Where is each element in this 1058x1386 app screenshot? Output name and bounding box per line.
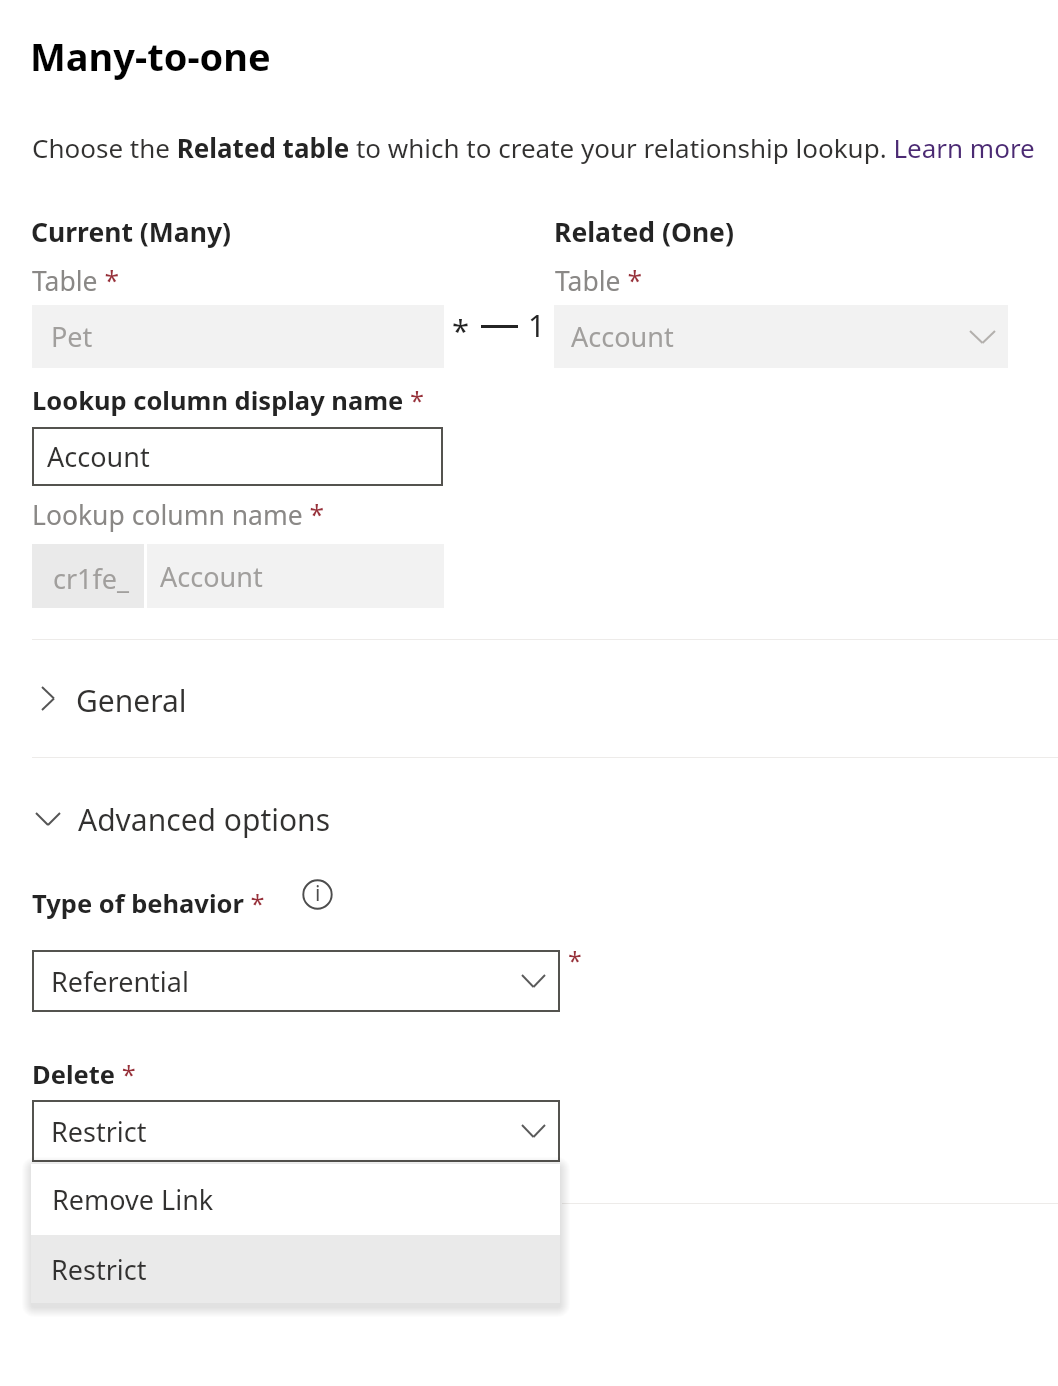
button[interactable]: Learn more [899, 133, 1035, 163]
staticText: Restrict [51, 1113, 147, 1150]
staticText: i [315, 879, 321, 908]
staticText: Account [47, 438, 150, 475]
button[interactable]: Account [32, 427, 443, 486]
staticText: Pet [51, 318, 93, 355]
staticText: Remove Link [52, 1181, 214, 1218]
staticText: Advanced options [78, 799, 331, 840]
staticText: Table * [32, 263, 120, 299]
button[interactable]: Advanced options [32, 787, 1058, 851]
staticText: Many-to-one [30, 30, 271, 82]
staticText: Related (One) [554, 214, 734, 250]
staticText: * [452, 309, 470, 351]
staticText: Lookup column display name * [32, 383, 424, 418]
button[interactable]: Restrict [32, 1100, 560, 1162]
button[interactable]: Restrict [31, 1235, 560, 1303]
staticText: Restrict [51, 1251, 147, 1288]
staticText: * [568, 943, 582, 977]
staticText: Account [571, 318, 674, 355]
staticText: General [76, 680, 187, 721]
button[interactable]: Pet [32, 305, 444, 368]
button[interactable]: Referential [32, 950, 560, 1012]
button[interactable]: Account [147, 544, 444, 608]
staticText: Lookup column name * [32, 497, 325, 533]
staticText: Table * [555, 263, 643, 299]
button[interactable]: Remove Link [31, 1164, 560, 1235]
staticText: Delete * [32, 1057, 136, 1092]
button[interactable]: More information [302, 879, 333, 910]
staticText: Current (Many) [31, 214, 232, 250]
staticText: Type of behavior * [32, 886, 265, 921]
staticText: 1 [528, 305, 546, 346]
staticText: Referential [51, 963, 189, 1000]
staticText: Account [160, 558, 263, 595]
staticText: cr1fe_ [53, 560, 130, 597]
button[interactable]: Account [554, 305, 1008, 368]
button[interactable]: General [32, 666, 1058, 730]
staticText: Choose the Related table to which to cre… [32, 130, 1035, 165]
